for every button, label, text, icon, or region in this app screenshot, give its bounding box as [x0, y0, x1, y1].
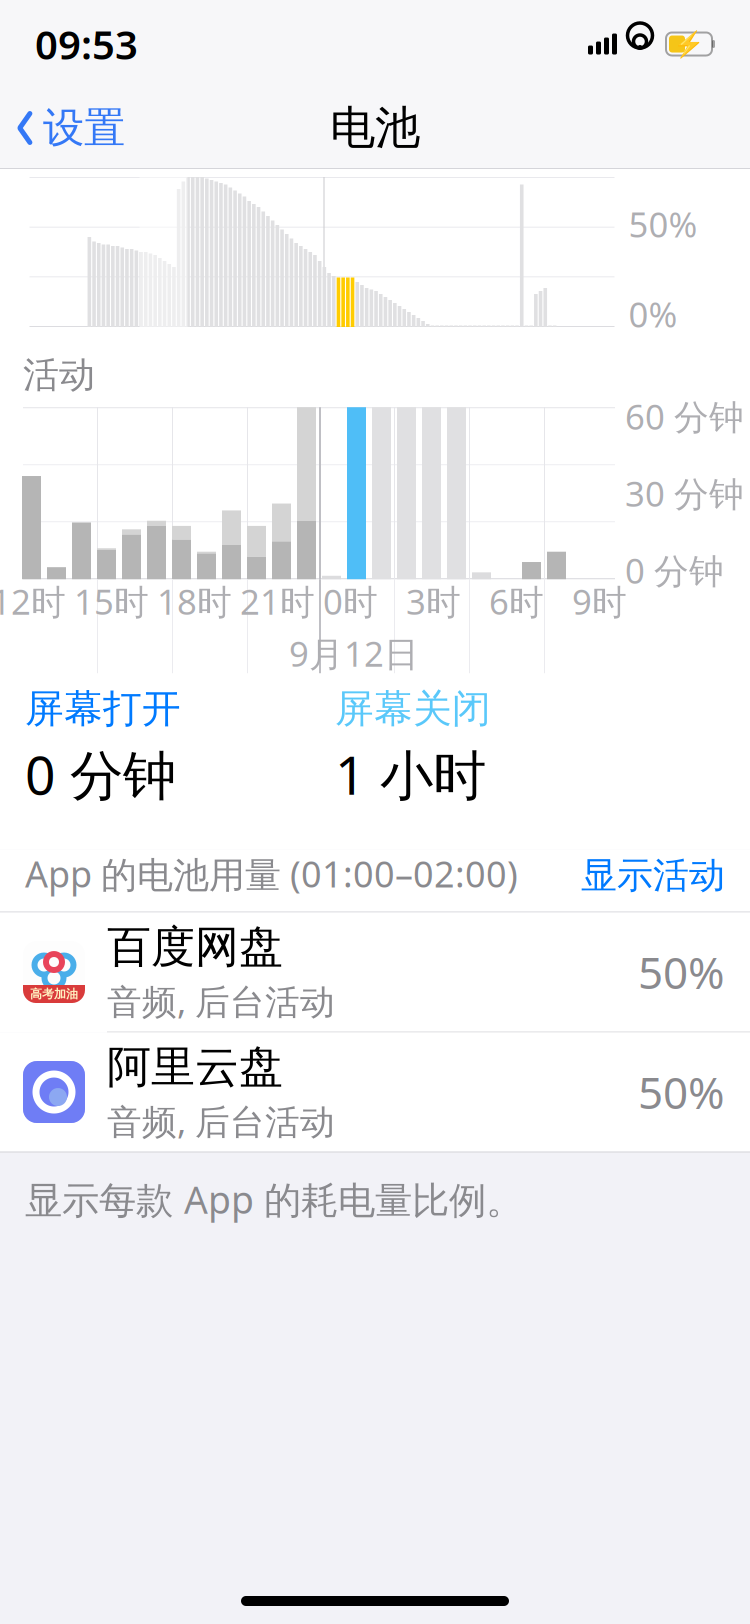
staticText: 0 分钟 — [25, 739, 176, 809]
staticText: 1 小时 — [335, 739, 486, 809]
staticText: 50% — [638, 1063, 725, 1121]
staticText: 9月12日 — [289, 630, 419, 676]
staticText: 50% — [628, 201, 697, 247]
staticText: 显示每款 App 的耗电量比例。 — [25, 1174, 523, 1224]
staticText: 0时 — [323, 578, 378, 624]
staticText: 15时 — [74, 578, 149, 624]
staticText: 阿里云盘 — [107, 1040, 283, 1094]
staticText: 设置 — [43, 103, 125, 153]
staticText: 3时 — [406, 578, 461, 624]
staticText: 0 分钟 — [625, 547, 724, 593]
staticText: 21时 — [240, 578, 315, 624]
staticText: 50% — [638, 943, 725, 1001]
staticText: ⚡ — [673, 29, 705, 58]
button[interactable]: 阿里云盘 — [0, 1032, 750, 1151]
staticText: 屏幕关闭 — [335, 685, 491, 733]
staticText: 百度网盘 — [107, 920, 283, 974]
staticText: 0% — [628, 291, 677, 337]
staticText: 屏幕打开 — [25, 685, 181, 733]
staticText: 18时 — [157, 578, 232, 624]
staticText: 电池 — [330, 100, 420, 156]
staticText: 显示活动 — [581, 853, 725, 897]
staticText: App 的电池用量 (01:00–02:00) — [25, 849, 518, 897]
staticText: 活动 — [23, 353, 95, 397]
button[interactable]: 高考加油 — [0, 912, 750, 1032]
staticText: 09:53 — [35, 17, 138, 70]
staticText: 60 分钟 — [625, 393, 744, 439]
staticText: 音频, 后台活动 — [107, 978, 335, 1024]
staticText: 高考加油 — [30, 987, 78, 1001]
button[interactable]: 设置 — [0, 98, 145, 158]
staticText: 9时 — [572, 578, 627, 624]
staticText: 12时 — [0, 578, 66, 624]
button[interactable]: 显示活动 — [581, 853, 725, 897]
staticText: 30 分钟 — [625, 470, 744, 516]
staticText: 6时 — [489, 578, 544, 624]
staticText: 音频, 后台活动 — [107, 1098, 335, 1144]
